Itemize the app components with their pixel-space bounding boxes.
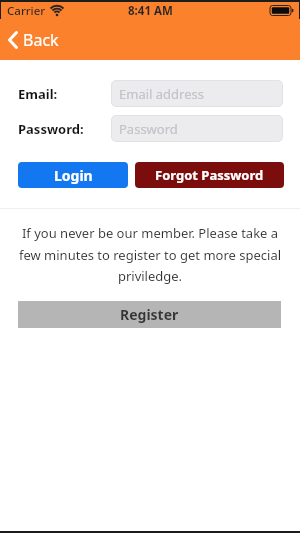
button[interactable]: Forgot Password <box>135 162 284 188</box>
staticText: Forgot Password <box>155 166 264 184</box>
staticText: 8:41 AM <box>128 3 173 19</box>
staticText: Carrier <box>7 3 46 19</box>
button[interactable]: Register <box>18 301 281 328</box>
staticText: Back <box>23 29 59 51</box>
button[interactable]: Password <box>111 115 283 142</box>
staticText: Email address <box>119 85 204 103</box>
staticText: Email: <box>18 85 58 103</box>
staticText: Register <box>120 305 179 324</box>
button[interactable]: Email address <box>111 80 283 107</box>
staticText: Password <box>119 120 178 138</box>
staticText: Login <box>54 166 93 185</box>
staticText: Password: <box>18 120 84 138</box>
staticText: If you never be our member. Please take … <box>0 224 300 285</box>
button[interactable]: Login <box>18 162 128 188</box>
button[interactable]: Back <box>0 29 59 51</box>
